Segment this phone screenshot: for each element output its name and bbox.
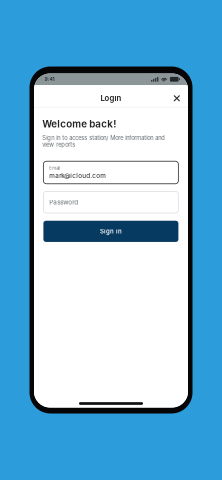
staticText: Login — [100, 94, 121, 103]
staticText: Email — [49, 165, 60, 171]
staticText: mark@icloud.com — [49, 172, 106, 179]
staticText: Password — [49, 198, 78, 206]
button[interactable]: Close — [169, 91, 184, 106]
staticText: Welcome back! — [42, 118, 116, 130]
staticText: Sign in — [100, 228, 122, 235]
button[interactable]: Sign in — [43, 221, 178, 242]
staticText: 9:41 — [44, 76, 54, 82]
staticText: Sign in to access station/ More informat… — [42, 134, 165, 148]
